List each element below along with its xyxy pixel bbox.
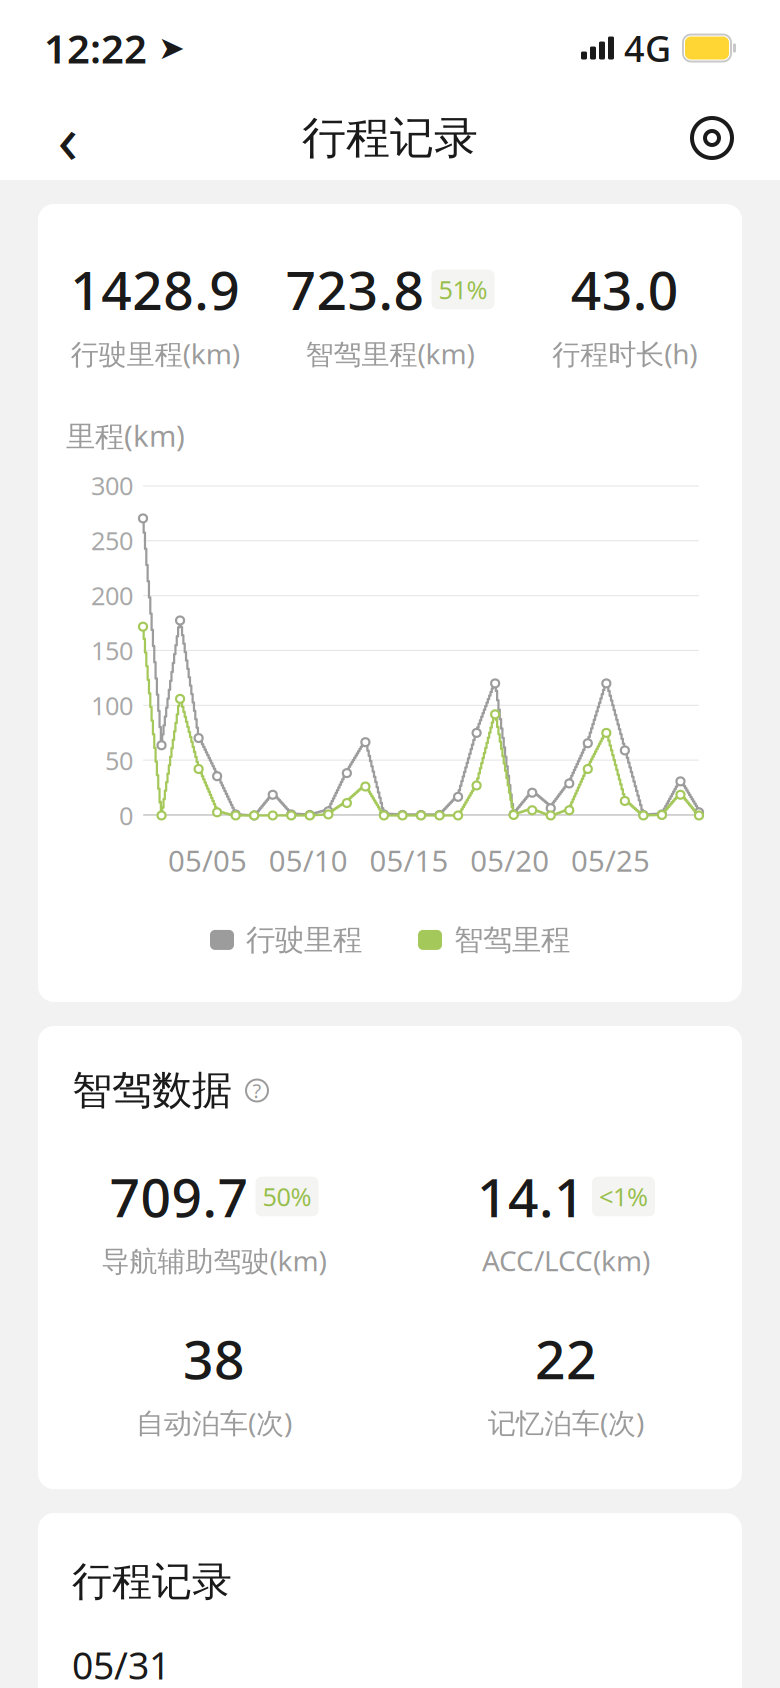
staticText: 行驶里程(km) — [71, 335, 240, 372]
staticText: 记忆泊车(次) — [488, 1404, 644, 1441]
staticText: 51% — [438, 273, 487, 306]
staticText: 38 — [183, 1323, 245, 1394]
staticText: 300 — [91, 469, 133, 502]
staticText: 0 — [119, 799, 133, 832]
staticText: 里程(km) — [66, 416, 185, 455]
button[interactable]: Back — [32, 102, 104, 174]
staticText: 智驾数据 — [72, 1066, 232, 1115]
staticText: 150 — [91, 634, 133, 667]
staticText: 250 — [91, 524, 133, 557]
staticText: 05/25 — [571, 841, 650, 880]
staticText: 行驶里程 — [246, 922, 362, 958]
staticText: 200 — [91, 579, 133, 612]
staticText: 行程记录 — [72, 1557, 232, 1606]
staticText: 行程记录 — [302, 111, 478, 165]
staticText: 自动泊车(次) — [136, 1404, 292, 1441]
staticText: 智驾里程(km) — [305, 335, 474, 372]
staticText: 05/05 — [168, 841, 247, 880]
staticText: 14.1 — [477, 1161, 585, 1232]
staticText: 723.8 — [285, 254, 424, 325]
staticText: 43.0 — [571, 254, 679, 325]
staticText: 50% — [262, 1180, 311, 1213]
staticText: 行程时长(h) — [552, 335, 697, 372]
staticText: 05/20 — [470, 841, 549, 880]
staticText: 1428.9 — [70, 254, 240, 325]
staticText: 12:22 — [44, 21, 147, 74]
button[interactable]: Settings — [676, 102, 748, 174]
staticText: <1% — [599, 1180, 648, 1213]
staticText: 50 — [105, 744, 133, 777]
staticText: 智驾里程 — [454, 922, 570, 958]
staticText: 05/31 — [72, 1640, 170, 1688]
staticText: 导航辅助驾驶(km) — [101, 1242, 326, 1279]
staticText: ➤ — [147, 30, 185, 66]
staticText: 709.7 — [109, 1161, 248, 1232]
staticText: 05/15 — [369, 841, 448, 880]
staticText: 22 — [535, 1323, 597, 1394]
staticText: ? — [252, 1077, 261, 1104]
staticText: 05/10 — [269, 841, 348, 880]
staticText: ACC/LCC(km) — [482, 1242, 650, 1279]
staticText: 100 — [91, 689, 133, 722]
staticText: 4G — [624, 24, 671, 72]
button[interactable]: About 智驾数据 — [240, 1073, 274, 1107]
staticText: ‹ — [57, 94, 78, 182]
